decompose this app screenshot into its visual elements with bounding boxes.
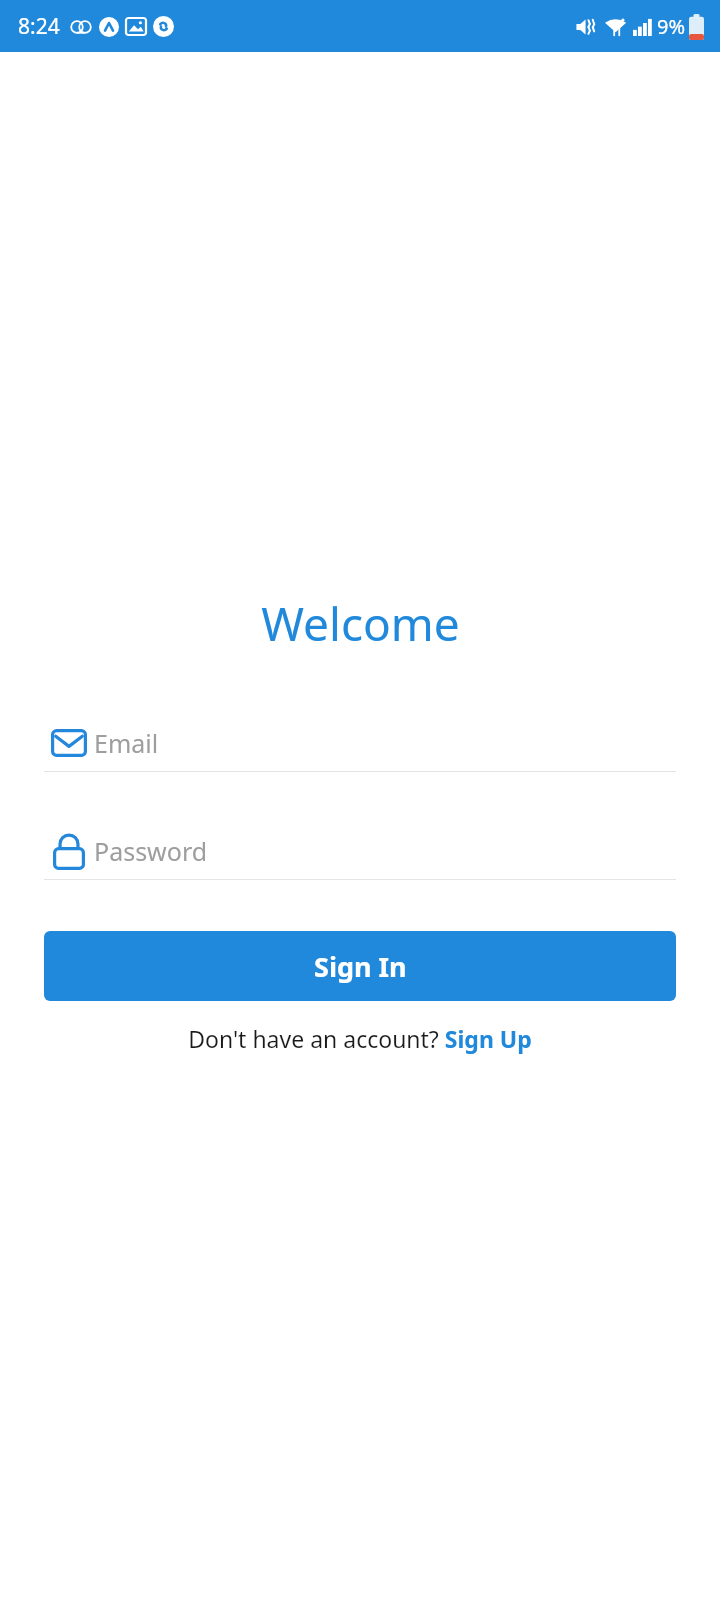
button[interactable]: Password [44, 823, 676, 880]
button[interactable]: Email [44, 715, 676, 772]
other: Email [44, 729, 94, 757]
button[interactable]: Don't have an account? Sign Up [44, 1023, 676, 1054]
staticText: Don't have an account? Sign Up [188, 1023, 532, 1054]
other: Password [44, 832, 94, 870]
staticText: Email [94, 726, 159, 760]
staticText: Welcome [261, 592, 460, 655]
staticText: 8:24 [18, 12, 60, 41]
button[interactable]: Sign In [44, 931, 676, 1001]
staticText: 9% [657, 13, 686, 40]
staticText: Password [94, 834, 208, 868]
staticText: Sign In [314, 948, 407, 985]
